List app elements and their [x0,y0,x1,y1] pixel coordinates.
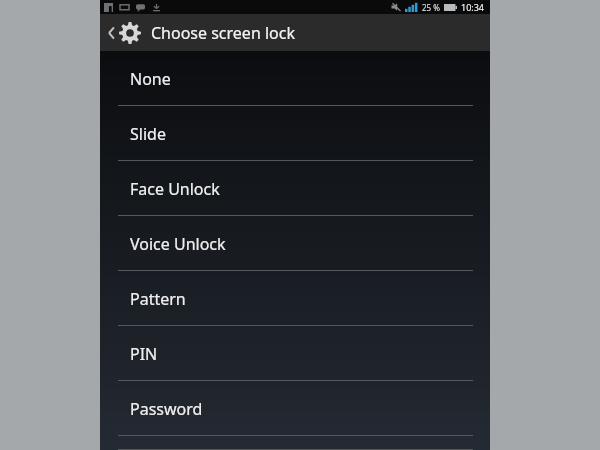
staticText: Choose screen lock [151,22,295,44]
staticText: Face Unlock [130,178,220,200]
staticText: PIN [130,343,158,365]
button[interactable]: Voice Unlock [100,216,490,271]
button[interactable]: None [100,51,490,106]
staticText: None [130,68,171,90]
staticText: Slide [130,123,166,145]
staticText: 10:34 [461,1,485,13]
button[interactable]: Pattern [100,271,490,326]
button[interactable]: Password [100,381,490,436]
staticText: Password [130,398,203,420]
staticText: Voice Unlock [130,233,226,255]
button[interactable]: Navigate up [100,14,490,51]
button[interactable]: PIN [100,326,490,381]
staticText: 25 % [422,2,440,13]
button[interactable]: Face Unlock [100,161,490,216]
staticText: Pattern [130,288,186,310]
button[interactable]: Slide [100,106,490,161]
